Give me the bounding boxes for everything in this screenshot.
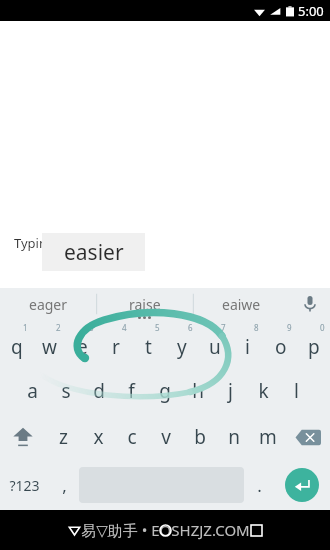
- staticText: j: [228, 378, 233, 404]
- staticText: c: [127, 424, 137, 450]
- staticText: 6: [188, 322, 193, 333]
- staticText: raise: [129, 295, 161, 314]
- button[interactable]: z: [46, 414, 81, 460]
- staticText: ,: [62, 474, 67, 497]
- button[interactable]: Voice input: [290, 288, 330, 320]
- staticText: 5:00: [298, 2, 324, 20]
- staticText: z: [59, 424, 68, 450]
- staticText: h: [192, 378, 204, 404]
- staticText: k: [258, 378, 269, 404]
- staticText: a: [27, 378, 38, 404]
- button[interactable]: 3: [66, 320, 99, 368]
- button[interactable]: l: [280, 368, 313, 414]
- button[interactable]: 8: [231, 320, 264, 368]
- button[interactable]: ?123: [0, 460, 49, 510]
- button[interactable]: Recent apps: [239, 513, 273, 547]
- staticText: v: [161, 424, 171, 450]
- button[interactable]: d: [82, 368, 115, 414]
- staticText: 0: [320, 322, 325, 333]
- staticText: eaiwe: [222, 295, 261, 314]
- button[interactable]: j: [214, 368, 247, 414]
- staticText: 9: [287, 322, 292, 333]
- staticText: y: [177, 334, 187, 360]
- staticText: b: [194, 424, 206, 450]
- button[interactable]: f: [115, 368, 148, 414]
- staticText: Typing is: [14, 234, 68, 252]
- button[interactable]: b: [183, 414, 217, 460]
- staticText: 5: [155, 322, 160, 333]
- staticText: l: [294, 378, 299, 404]
- staticText: w: [42, 334, 57, 360]
- staticText: r: [112, 334, 120, 360]
- staticText: f: [128, 378, 135, 404]
- button[interactable]: x: [81, 414, 115, 460]
- button[interactable]: n: [217, 414, 251, 460]
- button[interactable]: eaiwe: [193, 288, 290, 320]
- button[interactable]: Backspace: [285, 414, 330, 460]
- staticText: easier: [64, 238, 124, 267]
- button[interactable]: 2: [33, 320, 66, 368]
- button[interactable]: h: [181, 368, 214, 414]
- staticText: s: [61, 378, 71, 404]
- staticText: .: [257, 474, 262, 497]
- button[interactable]: v: [149, 414, 183, 460]
- button[interactable]: 4: [99, 320, 132, 368]
- staticText: p: [308, 334, 320, 360]
- staticText: 1: [23, 322, 28, 333]
- staticText: g: [159, 378, 171, 404]
- button[interactable]: 7: [198, 320, 231, 368]
- button[interactable]: Shift: [0, 414, 46, 460]
- staticText: 易▽助手 • EOSHZJZ.COM: [81, 520, 250, 540]
- button[interactable]: a: [16, 368, 49, 414]
- button[interactable]: .: [244, 460, 274, 510]
- button[interactable]: raise: [96, 288, 193, 320]
- button[interactable]: s: [49, 368, 82, 414]
- button[interactable]: c: [115, 414, 149, 460]
- button[interactable]: 9: [264, 320, 297, 368]
- staticText: i: [245, 334, 250, 360]
- button[interactable]: 6: [165, 320, 198, 368]
- button[interactable]: m: [251, 414, 285, 460]
- staticText: 4: [122, 322, 127, 333]
- button[interactable]: Home: [148, 513, 182, 547]
- staticText: 3: [89, 322, 94, 333]
- staticText: 8: [254, 322, 259, 333]
- staticText: q: [11, 334, 23, 360]
- staticText: e: [77, 334, 88, 360]
- button[interactable]: g: [148, 368, 181, 414]
- staticText: 7: [221, 322, 226, 333]
- staticText: eager: [29, 295, 68, 314]
- button[interactable]: Enter: [285, 468, 319, 502]
- staticText: 2: [56, 322, 61, 333]
- staticText: ?123: [9, 476, 40, 495]
- button[interactable]: ,: [49, 460, 79, 510]
- button[interactable]: k: [247, 368, 280, 414]
- staticText: u: [209, 334, 221, 360]
- button[interactable]: 1: [0, 320, 33, 368]
- button[interactable]: 0: [297, 320, 330, 368]
- button[interactable]: 5: [132, 320, 165, 368]
- staticText: t: [145, 334, 152, 360]
- staticText: m: [259, 424, 277, 450]
- staticText: o: [275, 334, 287, 360]
- button[interactable]: eager: [0, 288, 96, 320]
- button[interactable]: Back: [57, 513, 91, 547]
- staticText: d: [93, 378, 105, 404]
- staticText: x: [93, 424, 104, 450]
- staticText: n: [228, 424, 240, 450]
